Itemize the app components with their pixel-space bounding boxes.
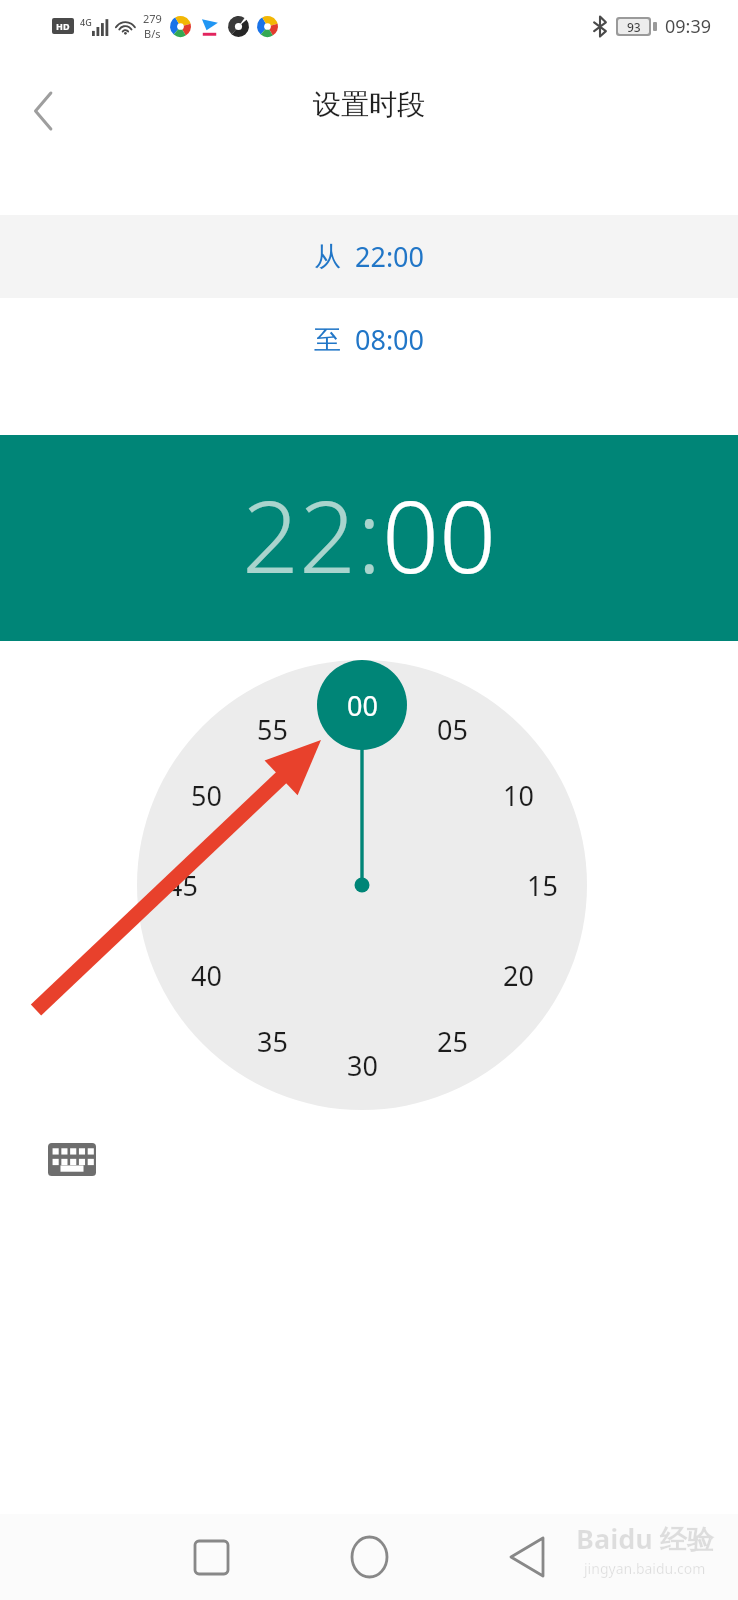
- staticText: 09:39: [665, 14, 712, 39]
- button[interactable]: 30: [328, 1041, 396, 1089]
- button[interactable]: 22: [242, 466, 357, 602]
- button[interactable]: Home: [335, 1523, 403, 1591]
- button[interactable]: Switch to keyboard input: [36, 1133, 108, 1185]
- staticText: 22:00: [355, 238, 425, 275]
- button[interactable]: 从: [0, 215, 738, 298]
- button[interactable]: 45: [148, 861, 216, 909]
- staticText: :: [357, 466, 382, 602]
- button[interactable]: Recents: [177, 1523, 245, 1591]
- button[interactable]: 20: [484, 951, 552, 999]
- button[interactable]: 至: [0, 298, 738, 381]
- button[interactable]: 00: [382, 466, 497, 602]
- staticText: 40: [191, 957, 222, 994]
- staticText: 20: [503, 957, 534, 994]
- staticText: 至: [314, 323, 341, 357]
- button[interactable]: Back: [8, 76, 78, 146]
- staticText: 08:00: [355, 321, 425, 358]
- staticText: 15: [527, 867, 558, 904]
- staticText: 从: [314, 240, 341, 274]
- staticText: 93: [627, 19, 641, 34]
- staticText: 4G: [80, 16, 92, 28]
- staticText: jingyan.baidu.com: [584, 1559, 706, 1578]
- staticText: 45: [167, 867, 198, 904]
- staticText: B/s: [144, 26, 161, 41]
- staticText: 25: [437, 1023, 468, 1060]
- staticText: 55: [257, 711, 288, 748]
- button[interactable]: 40: [172, 951, 240, 999]
- staticText: 30: [347, 1047, 378, 1084]
- button[interactable]: 50: [172, 771, 240, 819]
- staticText: 279: [143, 11, 162, 26]
- button[interactable]: 10: [484, 771, 552, 819]
- staticText: HD: [56, 20, 70, 32]
- button[interactable]: Minute dial: [137, 660, 587, 1110]
- button[interactable]: 35: [238, 1017, 306, 1065]
- staticText: Baidu 经验: [576, 1520, 714, 1557]
- staticText: 00: [382, 466, 497, 602]
- button[interactable]: 25: [418, 1017, 486, 1065]
- staticText: 50: [191, 777, 222, 814]
- button[interactable]: 15: [508, 861, 576, 909]
- button[interactable]: 00: [328, 681, 396, 729]
- staticText: 设置时段: [313, 87, 425, 122]
- button[interactable]: 55: [238, 705, 306, 753]
- staticText: 35: [257, 1023, 288, 1060]
- staticText: 10: [503, 777, 534, 814]
- button[interactable]: Back: [493, 1523, 561, 1591]
- staticText: 22: [242, 466, 357, 602]
- staticText: 00: [347, 687, 378, 724]
- button[interactable]: 05: [418, 705, 486, 753]
- staticText: 05: [437, 711, 468, 748]
